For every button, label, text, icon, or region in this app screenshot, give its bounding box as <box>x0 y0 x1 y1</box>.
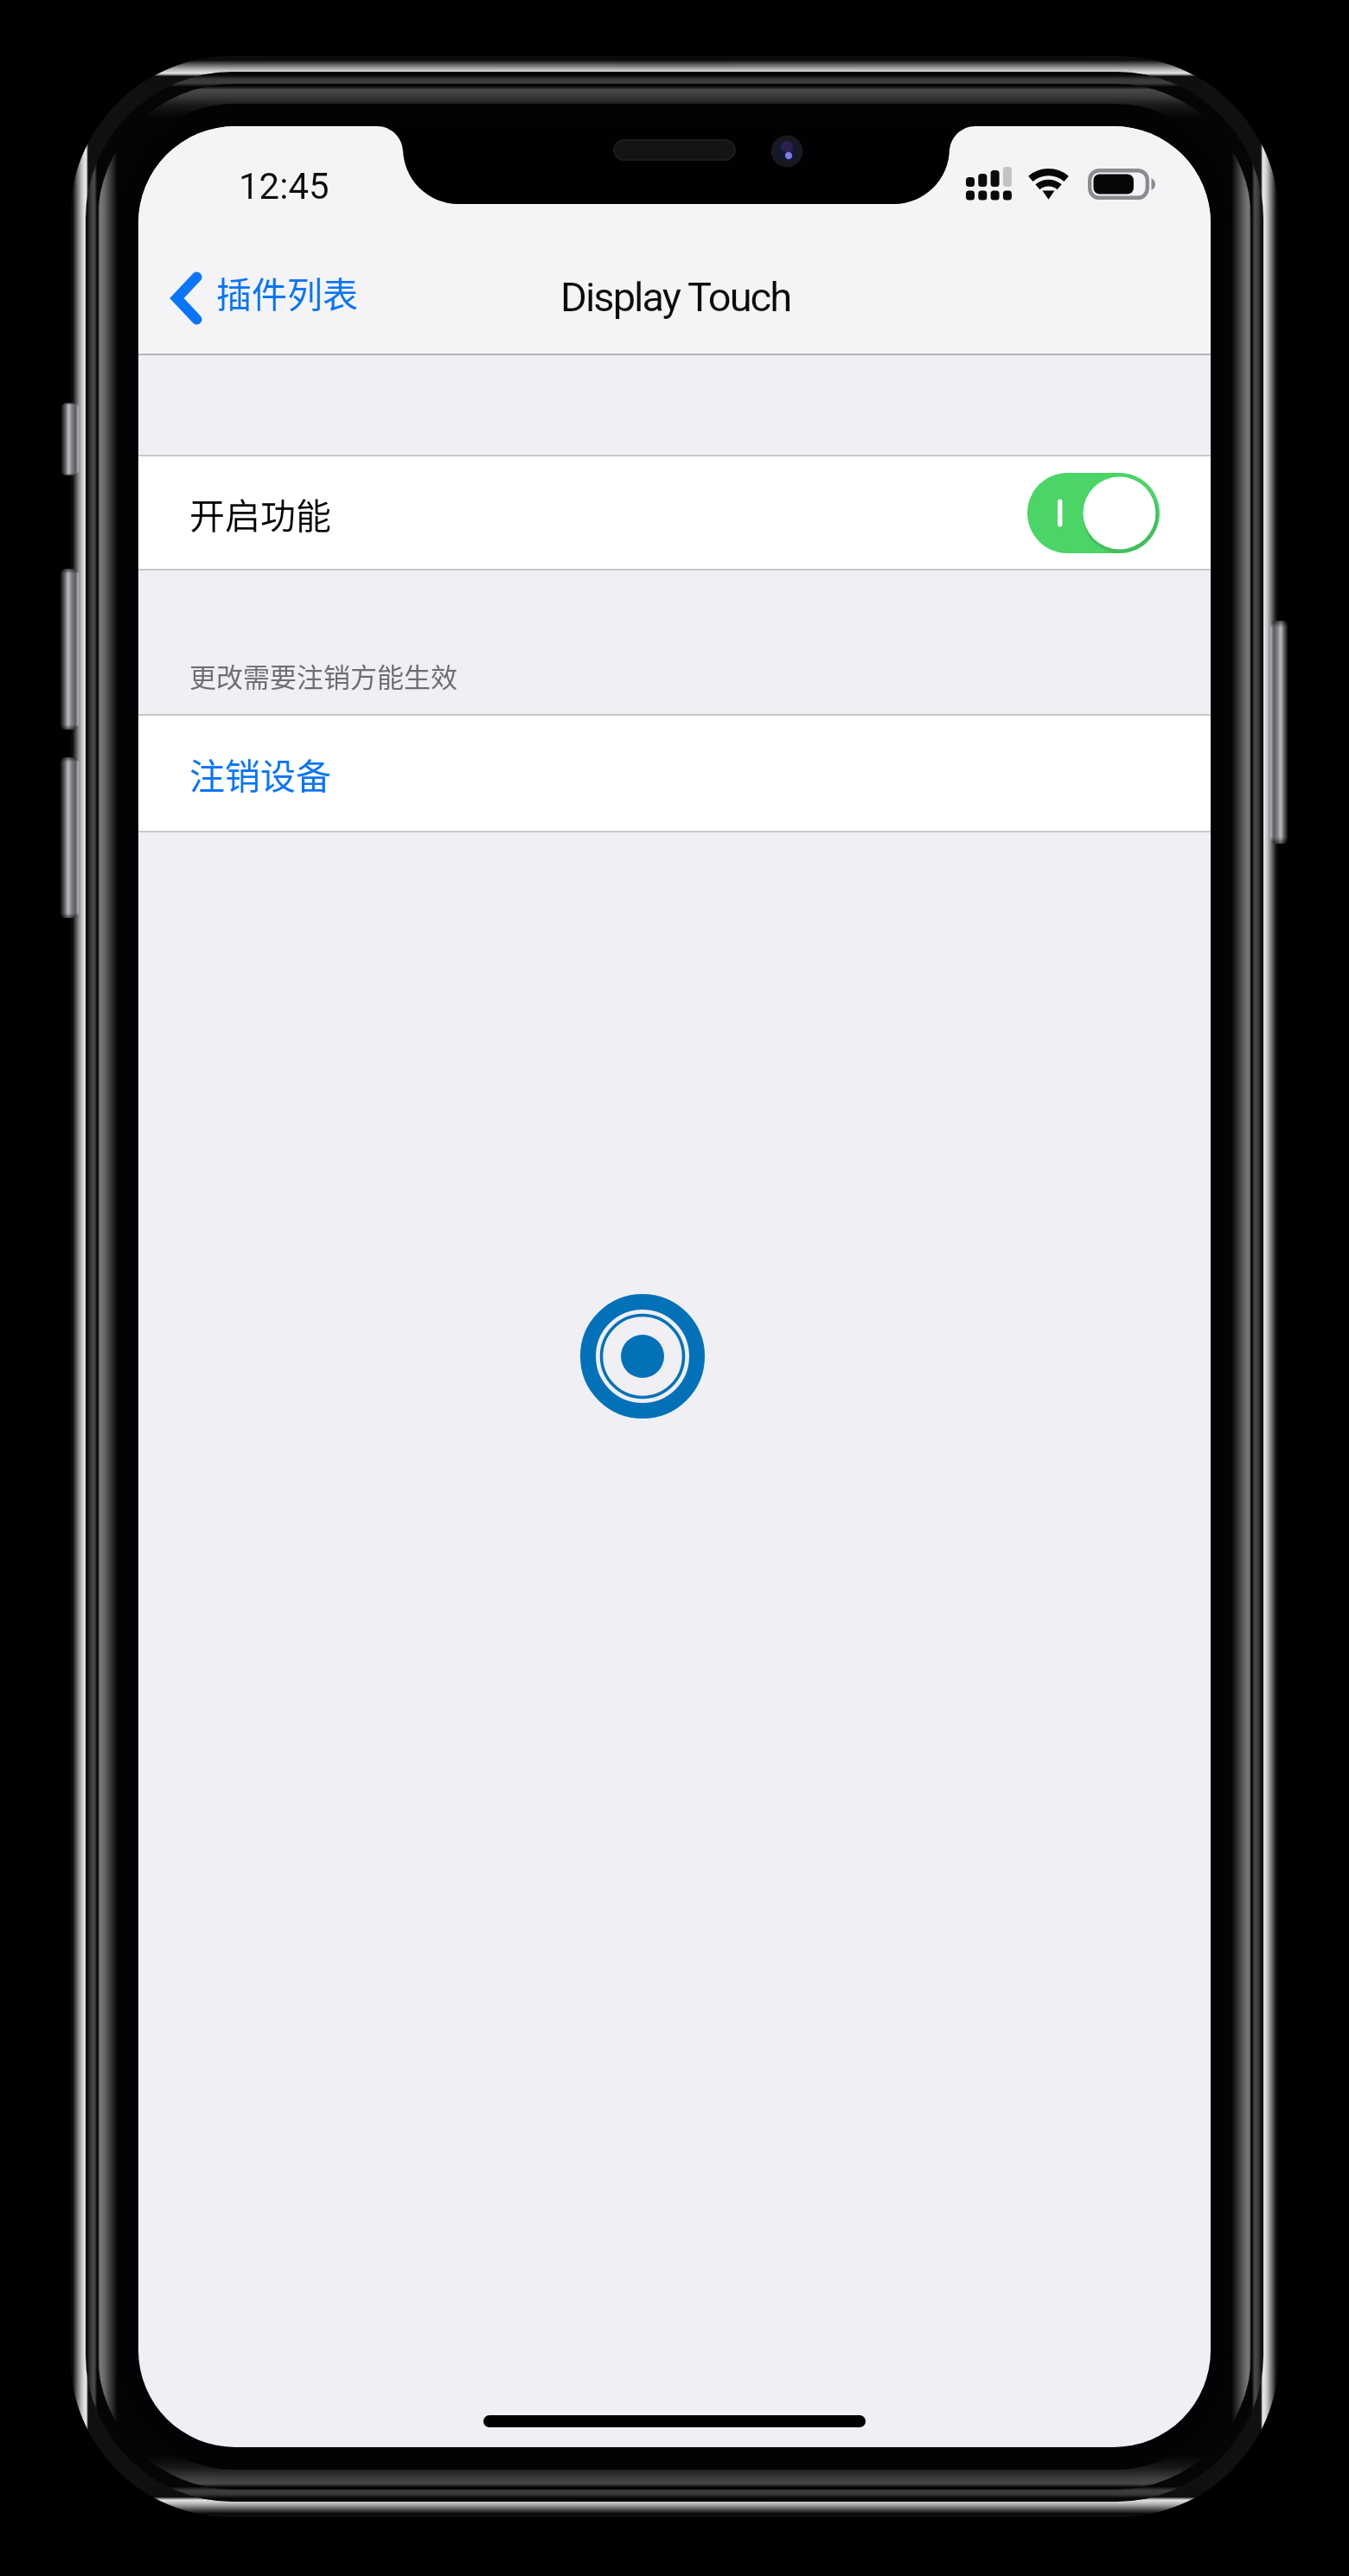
staticText: 插件列表 <box>216 266 358 317</box>
button[interactable]: 开启功能 switch <box>1027 473 1160 553</box>
staticText: 注销设备 <box>189 748 331 799</box>
staticText: 12:45 <box>239 165 329 207</box>
button[interactable]: 开启功能 <box>138 456 1211 569</box>
other: Back <box>171 271 202 325</box>
staticText: Display Touch <box>560 273 791 321</box>
button[interactable]: Back <box>171 239 358 343</box>
button[interactable]: 注销设备 <box>138 716 1211 831</box>
staticText: 开启功能 <box>189 488 331 539</box>
staticText: 更改需要注销方能生效 <box>189 656 457 695</box>
